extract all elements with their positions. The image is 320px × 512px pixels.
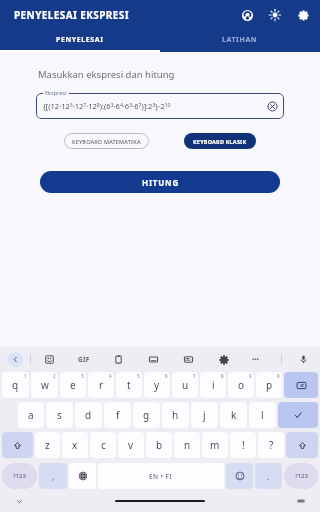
- staticText: g: [143, 408, 150, 422]
- button[interactable]: Voice input: [297, 353, 310, 366]
- staticText: GIF: [78, 355, 90, 364]
- staticText: p: [266, 378, 273, 392]
- button[interactable]: Emoji: [226, 463, 253, 489]
- button[interactable]: z: [35, 432, 60, 458]
- button[interactable]: More: [252, 355, 259, 363]
- button[interactable]: {[(12·123·127·128):(63·64·63·67)]:23}·21…: [36, 93, 284, 119]
- button[interactable]: Help: [238, 6, 256, 24]
- staticText: l: [261, 408, 264, 422]
- button[interactable]: n: [174, 432, 200, 458]
- button[interactable]: PENYELESAI: [0, 30, 160, 50]
- button[interactable]: Theme: [182, 353, 195, 366]
- staticText: ?: [269, 438, 274, 452]
- staticText: •••: [252, 355, 259, 363]
- button[interactable]: Change language: [69, 463, 96, 489]
- button[interactable]: Settings: [217, 353, 230, 366]
- staticText: ,: [52, 470, 55, 482]
- button[interactable]: Enter: [278, 402, 318, 428]
- staticText: 3: [81, 373, 84, 379]
- button[interactable]: b: [146, 432, 172, 458]
- button[interactable]: ?123: [284, 463, 318, 489]
- button[interactable]: i: [200, 372, 226, 398]
- button[interactable]: x: [62, 432, 88, 458]
- staticText: EN • FI: [149, 472, 173, 481]
- button[interactable]: c: [90, 432, 116, 458]
- button[interactable]: m: [202, 432, 228, 458]
- staticText: ?123: [295, 472, 308, 480]
- button[interactable]: Shift: [2, 432, 33, 458]
- button[interactable]: o: [228, 372, 254, 398]
- button[interactable]: Clear: [266, 100, 278, 112]
- staticText: h: [172, 408, 179, 422]
- staticText: {[(12·123·127·128):(63·64·63·67)]:23}·21…: [43, 101, 171, 112]
- button[interactable]: ,: [39, 463, 67, 489]
- button[interactable]: a: [18, 402, 44, 428]
- staticText: e: [70, 378, 76, 392]
- staticText: KEYBOARD KLASIK: [193, 138, 247, 145]
- button[interactable]: ?123: [2, 463, 37, 489]
- button[interactable]: u: [172, 372, 198, 398]
- staticText: r: [99, 378, 104, 392]
- button[interactable]: e: [60, 372, 86, 398]
- button[interactable]: d: [75, 402, 102, 428]
- staticText: q: [12, 378, 19, 392]
- button[interactable]: g: [133, 402, 160, 428]
- staticText: 2: [53, 373, 56, 379]
- button[interactable]: l: [249, 402, 276, 428]
- button[interactable]: LATIHAN: [160, 30, 320, 50]
- button[interactable]: p: [256, 372, 282, 398]
- button[interactable]: ?: [258, 432, 284, 458]
- button[interactable]: Settings: [294, 6, 312, 24]
- button[interactable]: Shift: [286, 432, 318, 458]
- button[interactable]: v: [118, 432, 144, 458]
- button[interactable]: j: [191, 402, 218, 428]
- staticText: PENYELESAI EKSPRESI: [14, 8, 130, 22]
- button[interactable]: GIF: [78, 355, 90, 364]
- button[interactable]: .: [255, 463, 282, 489]
- staticText: 5: [137, 373, 140, 379]
- button[interactable]: Translate: [147, 353, 160, 366]
- button[interactable]: k: [220, 402, 247, 428]
- staticText: o: [238, 378, 245, 392]
- staticText: 6: [165, 373, 168, 379]
- button[interactable]: Keyboard layout: [296, 496, 306, 506]
- staticText: PENYELESAI: [56, 35, 104, 45]
- staticText: c: [101, 438, 106, 452]
- button[interactable]: KEYBOARD KLASIK: [184, 133, 256, 149]
- staticText: 1: [24, 373, 27, 379]
- staticText: a: [28, 408, 34, 422]
- button[interactable]: KEYBOARD MATEMATIKA: [64, 133, 149, 149]
- button[interactable]: HITUNG: [40, 171, 280, 193]
- staticText: x: [72, 438, 78, 452]
- staticText: !: [242, 438, 245, 452]
- button[interactable]: Stickers: [43, 353, 56, 366]
- button[interactable]: s: [46, 402, 73, 428]
- staticText: Ekspresi: [45, 89, 67, 96]
- staticText: d: [85, 408, 92, 422]
- staticText: j: [203, 408, 206, 422]
- button[interactable]: !: [230, 432, 256, 458]
- button[interactable]: Home: [115, 500, 205, 502]
- staticText: 9: [249, 373, 252, 379]
- staticText: ?123: [13, 472, 26, 480]
- button[interactable]: Hide keyboard: [14, 496, 24, 506]
- button[interactable]: t: [116, 372, 142, 398]
- button[interactable]: q: [2, 372, 29, 398]
- button[interactable]: EN • FI: [98, 463, 224, 489]
- button[interactable]: r: [88, 372, 114, 398]
- staticText: HITUNG: [142, 177, 179, 188]
- button[interactable]: f: [104, 402, 131, 428]
- staticText: s: [57, 408, 62, 422]
- button[interactable]: Clipboard: [112, 353, 125, 366]
- button[interactable]: Back: [8, 352, 23, 367]
- staticText: KEYBOARD MATEMATIKA: [72, 138, 141, 145]
- staticText: Masukkan ekspresi dan hitung: [38, 68, 175, 81]
- staticText: w: [41, 378, 49, 392]
- button[interactable]: h: [162, 402, 189, 428]
- staticText: i: [212, 378, 215, 392]
- button[interactable]: Backspace: [284, 372, 318, 398]
- button[interactable]: w: [31, 372, 58, 398]
- button[interactable]: Brightness: [266, 6, 284, 24]
- button[interactable]: y: [144, 372, 170, 398]
- staticText: v: [128, 438, 134, 452]
